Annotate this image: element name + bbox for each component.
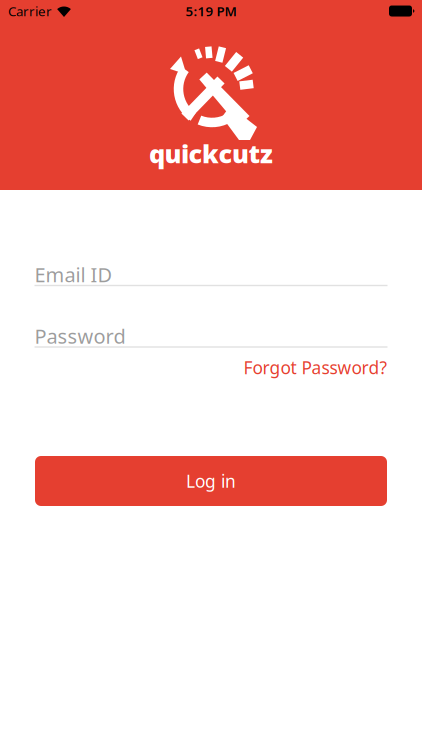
staticText: Carrier — [8, 2, 52, 20]
staticText: Password — [34, 323, 125, 349]
staticText: Email ID — [34, 261, 112, 288]
staticText: Log in — [186, 469, 236, 492]
button[interactable]: Forgot Password? — [243, 356, 387, 379]
staticText: 5:19 PM — [185, 2, 236, 20]
staticText: quickcutz — [149, 137, 273, 170]
staticText: Forgot Password? — [243, 356, 387, 379]
button[interactable]: Email ID — [34, 251, 387, 286]
button[interactable]: Password — [34, 313, 387, 348]
button[interactable]: Log in — [35, 456, 387, 506]
